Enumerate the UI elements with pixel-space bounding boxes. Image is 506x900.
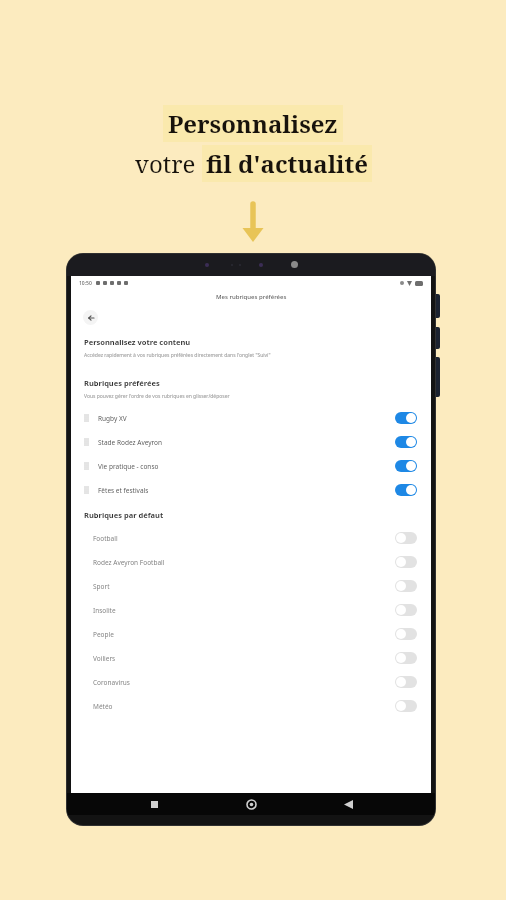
button[interactable]: Disabled <box>395 604 417 616</box>
button[interactable]: Football <box>71 526 431 550</box>
staticText: Vous pouvez gérer l'ordre de vos rubriqu… <box>84 393 230 400</box>
staticText: Insolite <box>93 606 116 615</box>
button[interactable]: Coronavirus <box>71 670 431 694</box>
button[interactable]: Stade Rodez Aveyron <box>71 430 431 454</box>
button[interactable]: Vie pratique - conso <box>71 454 431 478</box>
button[interactable]: Sport <box>71 574 431 598</box>
button[interactable]: Back <box>83 310 98 325</box>
button[interactable]: Enabled <box>395 460 417 472</box>
staticText: Personnalisez votre contenu <box>84 337 191 347</box>
staticText: Rubriques préférées <box>84 378 160 388</box>
button[interactable]: Disabled <box>395 652 417 664</box>
staticText: Rubriques par défaut <box>84 510 164 520</box>
button[interactable]: People <box>71 622 431 646</box>
staticText: Rodez Aveyron Football <box>93 558 165 567</box>
staticText: 10:50 <box>79 280 92 287</box>
staticText: Mes rubriques préférées <box>216 293 287 301</box>
staticText: Coronavirus <box>93 678 130 687</box>
staticText: Personnalisez <box>168 107 338 140</box>
staticText: Stade Rodez Aveyron <box>98 438 163 447</box>
button[interactable]: Disabled <box>395 628 417 640</box>
button[interactable]: Disabled <box>395 556 417 568</box>
staticText: Football <box>93 534 118 543</box>
button[interactable]: Disabled <box>395 700 417 712</box>
button[interactable]: Recents <box>144 794 164 814</box>
button[interactable]: Back <box>338 794 358 814</box>
button[interactable]: Fêtes et festivals <box>71 478 431 502</box>
button[interactable]: Disabled <box>395 676 417 688</box>
button[interactable]: Enabled <box>395 412 417 424</box>
button[interactable]: Disabled <box>395 532 417 544</box>
button[interactable]: Insolite <box>71 598 431 622</box>
staticText: Sport <box>93 582 110 591</box>
button[interactable]: Enabled <box>395 436 417 448</box>
staticText: fil d'actualité <box>206 147 368 180</box>
staticText: Accédez rapidement à vos rubriques préfé… <box>84 352 271 359</box>
staticText: votre <box>135 147 202 180</box>
button[interactable]: Disabled <box>395 580 417 592</box>
button[interactable]: Rugby XV <box>71 406 431 430</box>
staticText: Fêtes et festivals <box>98 486 149 495</box>
staticText: Rugby XV <box>98 414 127 423</box>
button[interactable]: Home <box>241 794 261 814</box>
staticText: Météo <box>93 702 113 711</box>
button[interactable]: Rodez Aveyron Football <box>71 550 431 574</box>
button[interactable]: Enabled <box>395 484 417 496</box>
staticText: Vie pratique - conso <box>98 462 159 471</box>
button[interactable]: Voiliers <box>71 646 431 670</box>
button[interactable]: Météo <box>71 694 431 718</box>
staticText: People <box>93 630 114 639</box>
staticText: Voiliers <box>93 654 116 663</box>
